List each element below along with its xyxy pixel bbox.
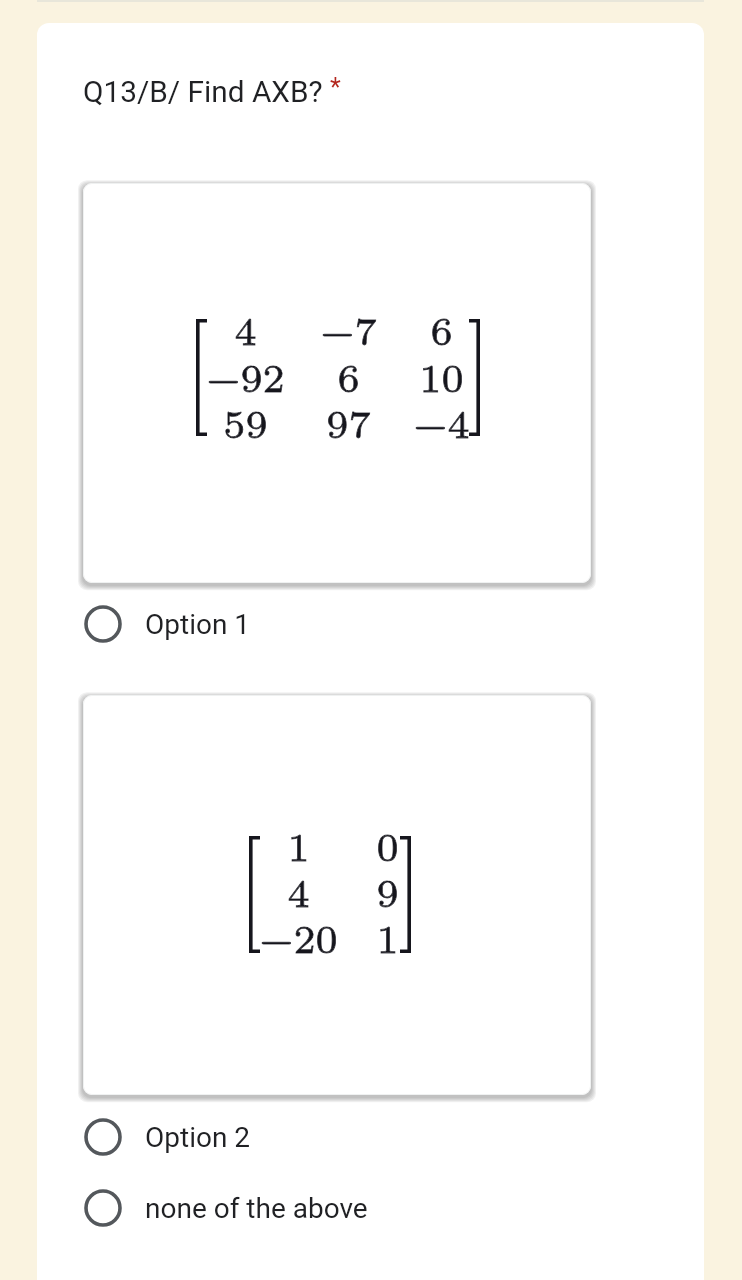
staticText: Option 2 — [145, 1121, 251, 1154]
staticText: 4 — [234, 301, 257, 356]
staticText: 97 — [326, 394, 371, 449]
staticText: 10 — [419, 348, 464, 403]
staticText: −20 — [259, 909, 338, 964]
staticText: none of the above — [145, 1192, 368, 1225]
staticText: 4 — [287, 863, 310, 918]
staticText: 9 — [376, 863, 399, 918]
staticText: 59 — [223, 394, 268, 449]
staticText: 9 — [376, 863, 399, 918]
staticText: 6 — [430, 301, 453, 356]
staticText: 1 — [376, 909, 399, 964]
staticText: 10 — [419, 348, 464, 403]
staticText: 97 — [326, 394, 371, 449]
staticText: 4 — [234, 301, 257, 356]
staticText: −92 — [206, 348, 285, 403]
staticText: 6 — [337, 348, 360, 403]
staticText: 59 — [223, 394, 268, 449]
staticText: 0 — [376, 817, 399, 872]
staticText: * — [330, 73, 341, 102]
staticText: −20 — [259, 909, 338, 964]
button[interactable]: Option 1 — [83, 600, 683, 648]
staticText: Option 1 — [145, 608, 251, 641]
staticText: 6 — [337, 348, 360, 403]
staticText: −92 — [206, 348, 285, 403]
staticText: 0 — [376, 817, 399, 872]
button[interactable]: none of the above — [83, 1184, 683, 1232]
staticText: 1 — [376, 909, 399, 964]
staticText: 1 — [287, 817, 310, 872]
staticText: −4 — [413, 394, 470, 449]
staticText: −7 — [320, 301, 377, 356]
staticText: −7 — [320, 301, 377, 356]
staticText: 1 — [287, 817, 310, 872]
staticText: 4 — [287, 863, 310, 918]
staticText: −4 — [413, 394, 470, 449]
button[interactable]: Option 2 — [83, 1113, 683, 1161]
staticText: Q13/B/ Find AXB? — [83, 74, 323, 109]
staticText: 6 — [430, 301, 453, 356]
